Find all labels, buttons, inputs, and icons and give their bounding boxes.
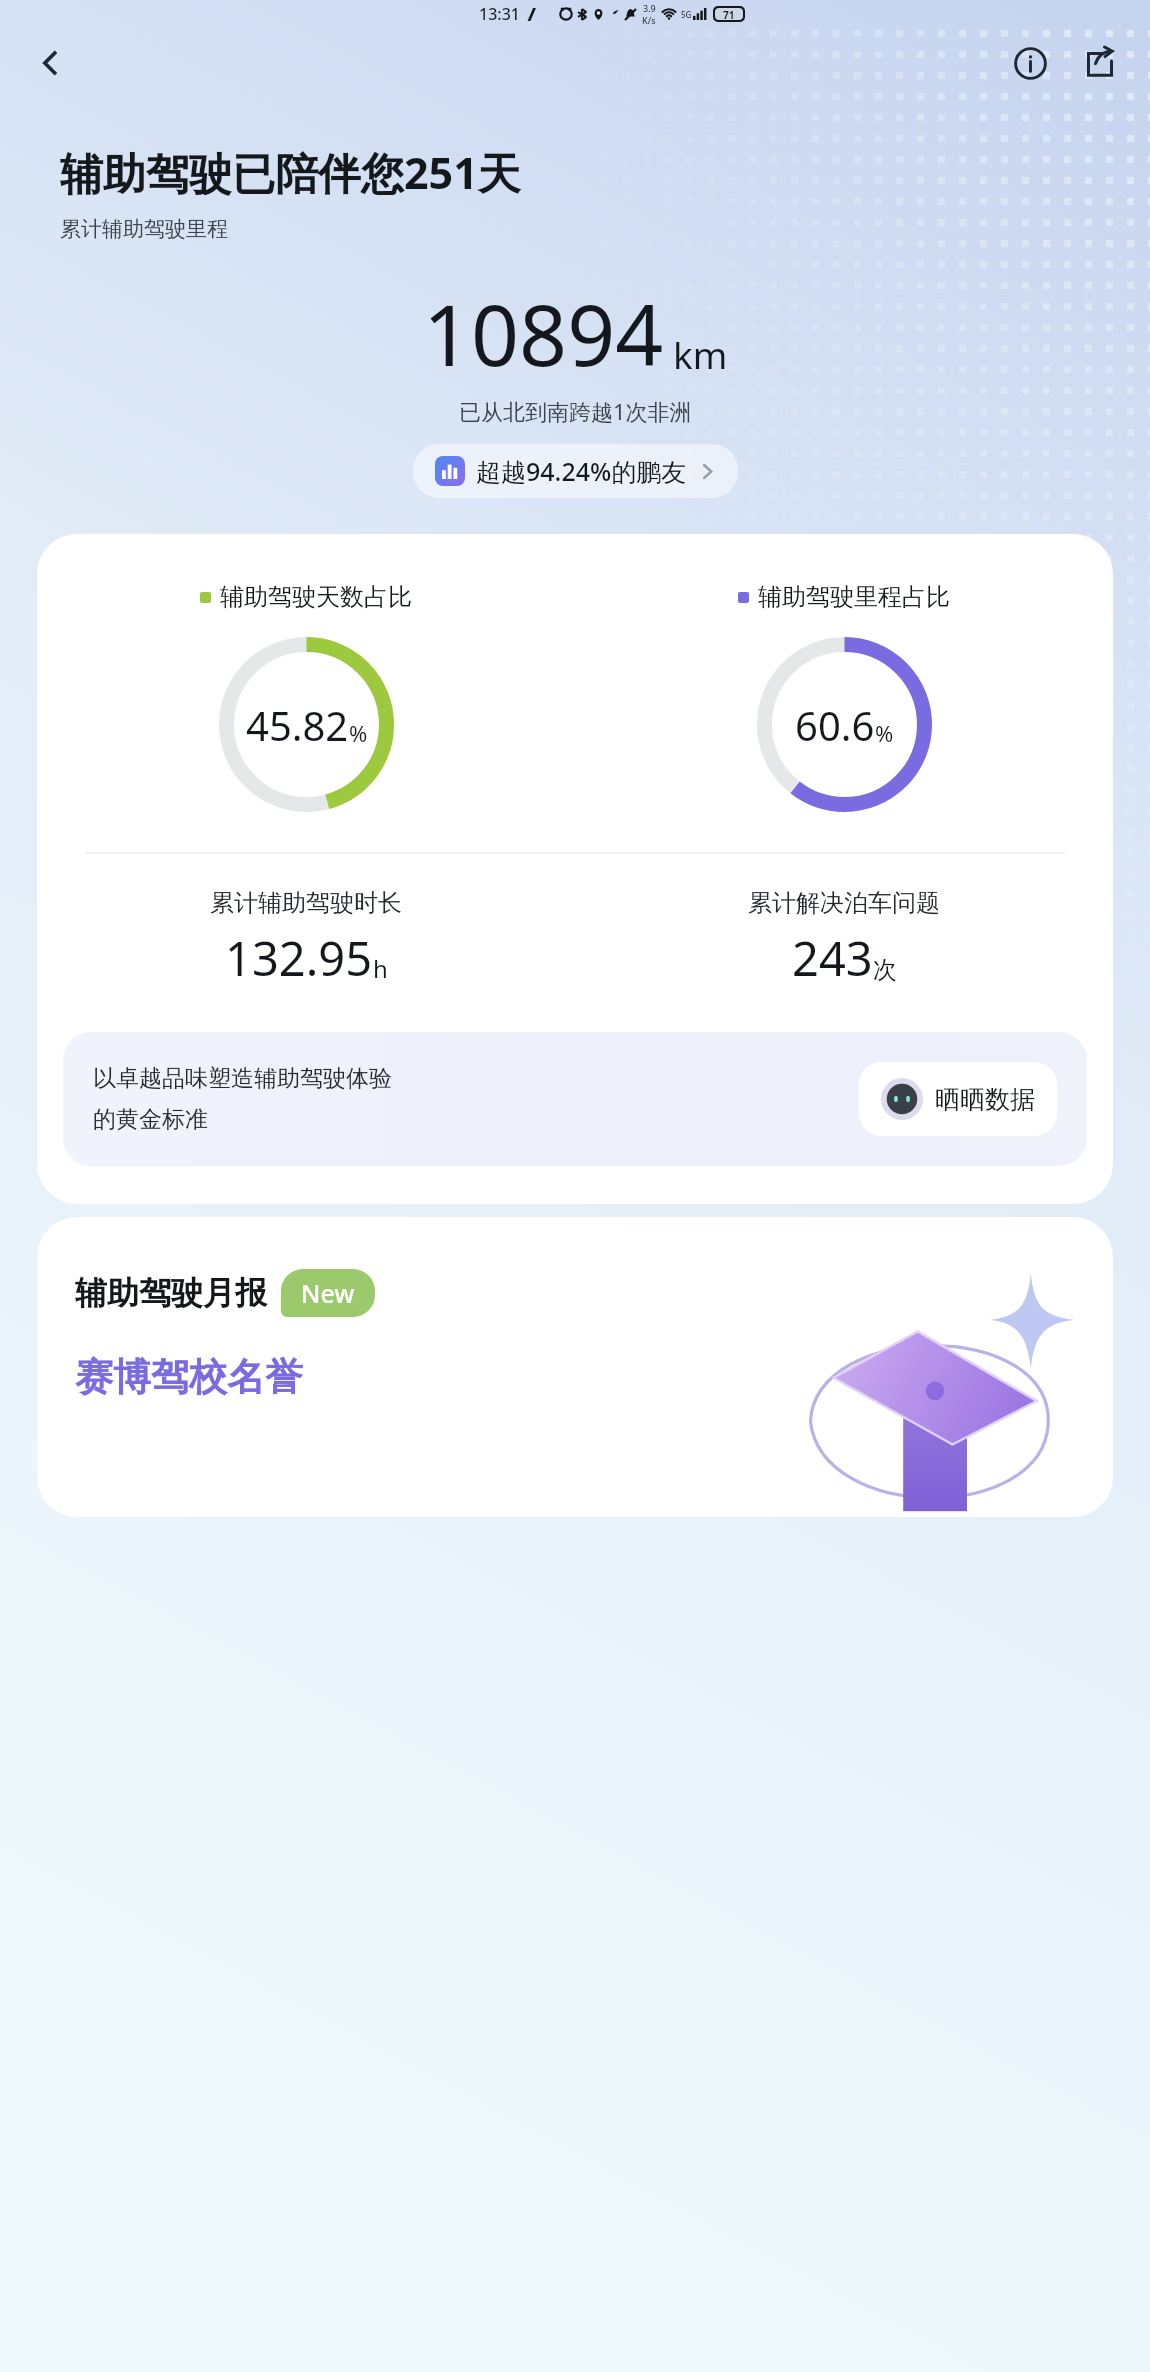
staticText: 10894 [423,276,664,390]
staticText: 71 [723,8,735,20]
staticText: 累计辅助驾驶里程 [60,216,228,242]
staticText: 辅助驾驶天数占比 [220,582,412,612]
staticText: 以卓越品味塑造辅助驾驶体验 [93,1064,392,1093]
button[interactable]: 超越94.24%的鹏友 [413,444,738,498]
staticText: 辅助驾驶月报 [75,1273,267,1313]
staticText: % [875,718,894,748]
staticText: h [373,952,388,985]
button[interactable]: Share [1076,39,1124,87]
staticText: 辅助驾驶已陪伴您251天 [60,143,521,202]
staticText: 晒晒数据 [935,1084,1035,1115]
staticText: 60.6 [795,698,875,752]
staticText: 次 [873,955,897,985]
staticText: 累计解决泊车问题 [748,888,940,918]
button[interactable]: 辅助驾驶月报 [37,1217,1113,1517]
staticText: km [673,329,728,379]
staticText: 的黄金标准 [93,1105,208,1134]
staticText: 132.95 [225,926,373,990]
staticText: New [301,1276,355,1310]
staticText: 3.9 [643,2,656,14]
staticText: 累计辅助驾驶时长 [210,888,402,918]
button[interactable]: Information [1006,39,1054,87]
staticText: 13:31 [479,3,520,25]
staticText: 243 [792,926,873,990]
staticText: K/s [642,14,656,26]
staticText: 5G [681,9,692,20]
button[interactable]: 晒晒数据 [859,1062,1057,1136]
staticText: 已从北到南跨越1次非洲 [459,396,692,426]
staticText: 45.82 [246,698,349,752]
staticText: % [349,718,368,748]
staticText: 辅助驾驶里程占比 [758,582,950,612]
button[interactable]: Back [26,39,74,87]
staticText: 超越94.24%的鹏友 [476,454,687,488]
staticText: 赛博驾校名誉 [75,1353,303,1401]
